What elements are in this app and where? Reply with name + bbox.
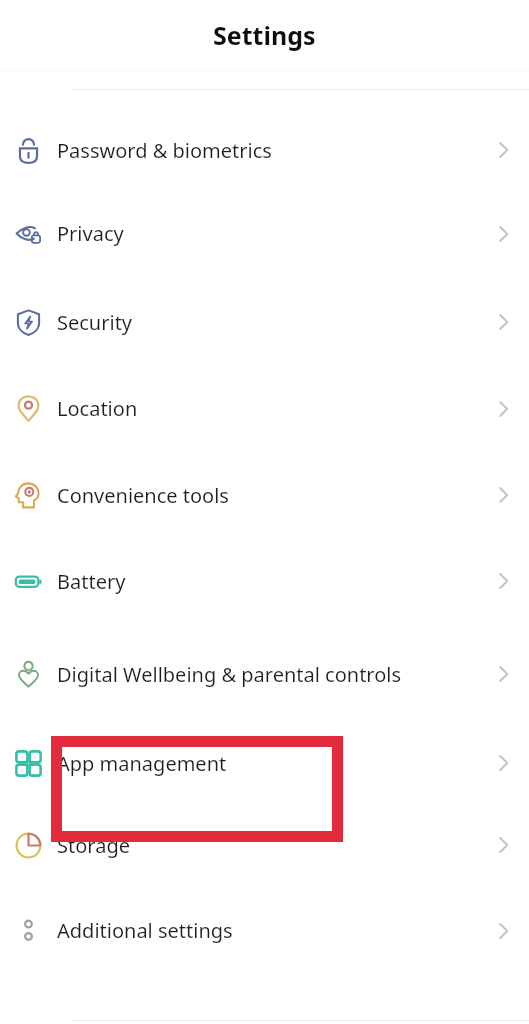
button[interactable]: Additional settings	[0, 888, 529, 973]
staticText: Digital Wellbeing & parental controls	[57, 661, 457, 688]
staticText: Privacy	[57, 220, 457, 247]
button[interactable]: Storage	[0, 802, 529, 888]
button[interactable]: Convenience tools	[0, 452, 529, 538]
button[interactable]: Location	[0, 365, 529, 452]
staticText: Settings	[213, 18, 316, 52]
staticText: Security	[57, 309, 457, 336]
button[interactable]: Digital Wellbeing & parental controls	[0, 624, 529, 724]
staticText: Additional settings	[57, 917, 457, 944]
staticText: Password & biometrics	[57, 137, 457, 164]
staticText: Battery	[57, 568, 457, 595]
staticText: App management	[57, 750, 457, 777]
button[interactable]: App management	[0, 724, 529, 802]
button[interactable]: Password & biometrics	[0, 112, 529, 188]
staticText: Convenience tools	[57, 482, 457, 509]
staticText: Location	[57, 395, 457, 422]
staticText: Storage	[57, 832, 457, 859]
button[interactable]: Privacy	[0, 188, 529, 279]
button[interactable]: Battery	[0, 538, 529, 624]
button[interactable]: Security	[0, 279, 529, 365]
